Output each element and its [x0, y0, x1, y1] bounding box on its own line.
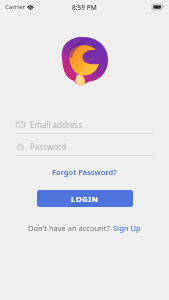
staticText: LOGIN — [71, 194, 99, 204]
button[interactable]: Password — [16, 138, 153, 156]
staticText: Forgot Password? — [52, 167, 117, 177]
button[interactable]: Email — [16, 116, 153, 134]
staticText: 8:59 PM — [72, 3, 97, 12]
staticText: Password — [30, 141, 67, 152]
staticText: Carrier — [5, 3, 25, 11]
other: Email — [16, 120, 25, 129]
staticText: Don't have an account? — [28, 223, 112, 233]
button[interactable]: LOGIN — [37, 190, 133, 207]
other: Password — [16, 142, 25, 151]
button[interactable]: Sign Up — [112, 221, 142, 235]
button[interactable]: Forgot Password? — [48, 165, 121, 179]
staticText: Email address — [30, 119, 83, 130]
staticText: Sign Up — [113, 223, 141, 233]
